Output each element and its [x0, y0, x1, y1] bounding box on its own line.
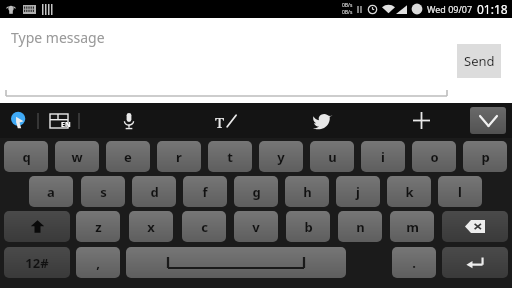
- staticText: EN: [61, 120, 71, 130]
- button[interactable]: h: [285, 176, 329, 207]
- button[interactable]: b: [286, 211, 330, 242]
- button[interactable]: z: [76, 211, 120, 242]
- button[interactable]: o: [412, 141, 456, 172]
- button[interactable]: s: [81, 176, 125, 207]
- button[interactable]: r: [157, 141, 201, 172]
- button[interactable]: Voice input: [80, 103, 177, 138]
- button[interactable]: ,: [76, 247, 120, 278]
- staticText: 0B/s: [342, 9, 353, 16]
- staticText: j: [356, 183, 360, 201]
- staticText: 0B/s: [342, 2, 353, 9]
- button[interactable]: 12#: [4, 247, 70, 278]
- button[interactable]: i: [361, 141, 405, 172]
- staticText: v: [252, 218, 260, 236]
- button[interactable]: p: [463, 141, 507, 172]
- staticText: Send: [464, 52, 495, 70]
- button[interactable]: y: [259, 141, 303, 172]
- button[interactable]: k: [387, 176, 431, 207]
- button[interactable]: Swype settings: [0, 103, 38, 138]
- staticText: s: [100, 183, 107, 201]
- staticText: e: [124, 148, 132, 166]
- button[interactable]: u: [310, 141, 354, 172]
- button[interactable]: Shift: [4, 211, 70, 242]
- button[interactable]: Backspace: [442, 211, 508, 242]
- button[interactable]: m: [390, 211, 434, 242]
- staticText: z: [95, 218, 102, 236]
- button[interactable]: w: [55, 141, 99, 172]
- staticText: h: [303, 183, 312, 201]
- button[interactable]: f: [183, 176, 227, 207]
- button[interactable]: Twitter: [274, 103, 372, 138]
- button[interactable]: More options: [372, 103, 470, 138]
- button[interactable]: c: [182, 211, 226, 242]
- button[interactable]: t: [208, 141, 252, 172]
- staticText: t: [227, 148, 233, 166]
- staticText: k: [405, 183, 414, 201]
- staticText: 12#: [25, 254, 49, 272]
- staticText: m: [406, 218, 419, 236]
- button[interactable]: Enter: [442, 247, 508, 278]
- button[interactable]: g: [234, 176, 278, 207]
- button[interactable]: n: [338, 211, 382, 242]
- staticText: .: [412, 254, 416, 272]
- staticText: d: [150, 183, 159, 201]
- staticText: 01:18: [477, 1, 508, 17]
- staticText: Type message: [11, 28, 105, 47]
- button[interactable]: e: [106, 141, 150, 172]
- staticText: p: [481, 148, 490, 166]
- button[interactable]: v: [234, 211, 278, 242]
- staticText: i: [381, 148, 385, 166]
- staticText: w: [71, 148, 83, 166]
- button[interactable]: j: [336, 176, 380, 207]
- staticText: o: [430, 148, 439, 166]
- staticText: Wed 09/07: [427, 3, 473, 15]
- button[interactable]: Hide keyboard: [470, 107, 506, 134]
- staticText: c: [201, 218, 208, 236]
- button[interactable]: x: [129, 211, 173, 242]
- button[interactable]: Language EN: [39, 103, 79, 138]
- button[interactable]: Send: [457, 44, 501, 78]
- staticText: a: [47, 183, 55, 201]
- staticText: ,: [96, 254, 100, 272]
- button[interactable]: q: [4, 141, 48, 172]
- button[interactable]: .: [392, 247, 436, 278]
- staticText: y: [277, 148, 285, 166]
- staticText: b: [304, 218, 313, 236]
- staticText: x: [147, 218, 155, 236]
- staticText: f: [202, 183, 208, 201]
- button[interactable]: Space: [126, 247, 346, 278]
- button[interactable]: d: [132, 176, 176, 207]
- staticText: n: [356, 218, 365, 236]
- staticText: T: [215, 112, 225, 130]
- staticText: r: [176, 148, 182, 166]
- button[interactable]: a: [29, 176, 73, 207]
- staticText: l: [458, 183, 462, 201]
- staticText: g: [252, 183, 261, 201]
- staticText: q: [22, 148, 31, 166]
- button[interactable]: Handwriting: [177, 103, 274, 138]
- button[interactable]: l: [438, 176, 482, 207]
- staticText: u: [328, 148, 337, 166]
